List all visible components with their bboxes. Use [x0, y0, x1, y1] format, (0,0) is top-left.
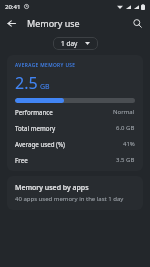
staticText: 20:41: [5, 3, 21, 11]
button[interactable]: 1 day: [53, 37, 98, 50]
staticText: 6.0 GB: [116, 124, 135, 132]
staticText: Total memory: [15, 124, 56, 132]
staticText: 1 day: [61, 39, 78, 48]
staticText: Normal: [113, 108, 135, 116]
staticText: 2.5: [15, 72, 38, 94]
staticText: Memory use: [27, 17, 80, 29]
staticText: Average used (%): [15, 140, 65, 148]
button[interactable]: Back: [3, 15, 19, 31]
staticText: 3.5 GB: [116, 156, 135, 164]
staticText: 40 apps used memory in the last 1 day: [15, 195, 124, 203]
staticText: 41%: [123, 140, 135, 148]
staticText: Memory used by apps: [15, 183, 89, 193]
button[interactable]: Memory used by apps: [7, 176, 143, 210]
staticText: GB: [40, 82, 50, 92]
button[interactable]: Search: [129, 15, 145, 31]
staticText: Free: [15, 156, 28, 164]
staticText: Performance: [15, 108, 53, 116]
staticText: AVERAGE MEMORY USE: [15, 62, 76, 69]
